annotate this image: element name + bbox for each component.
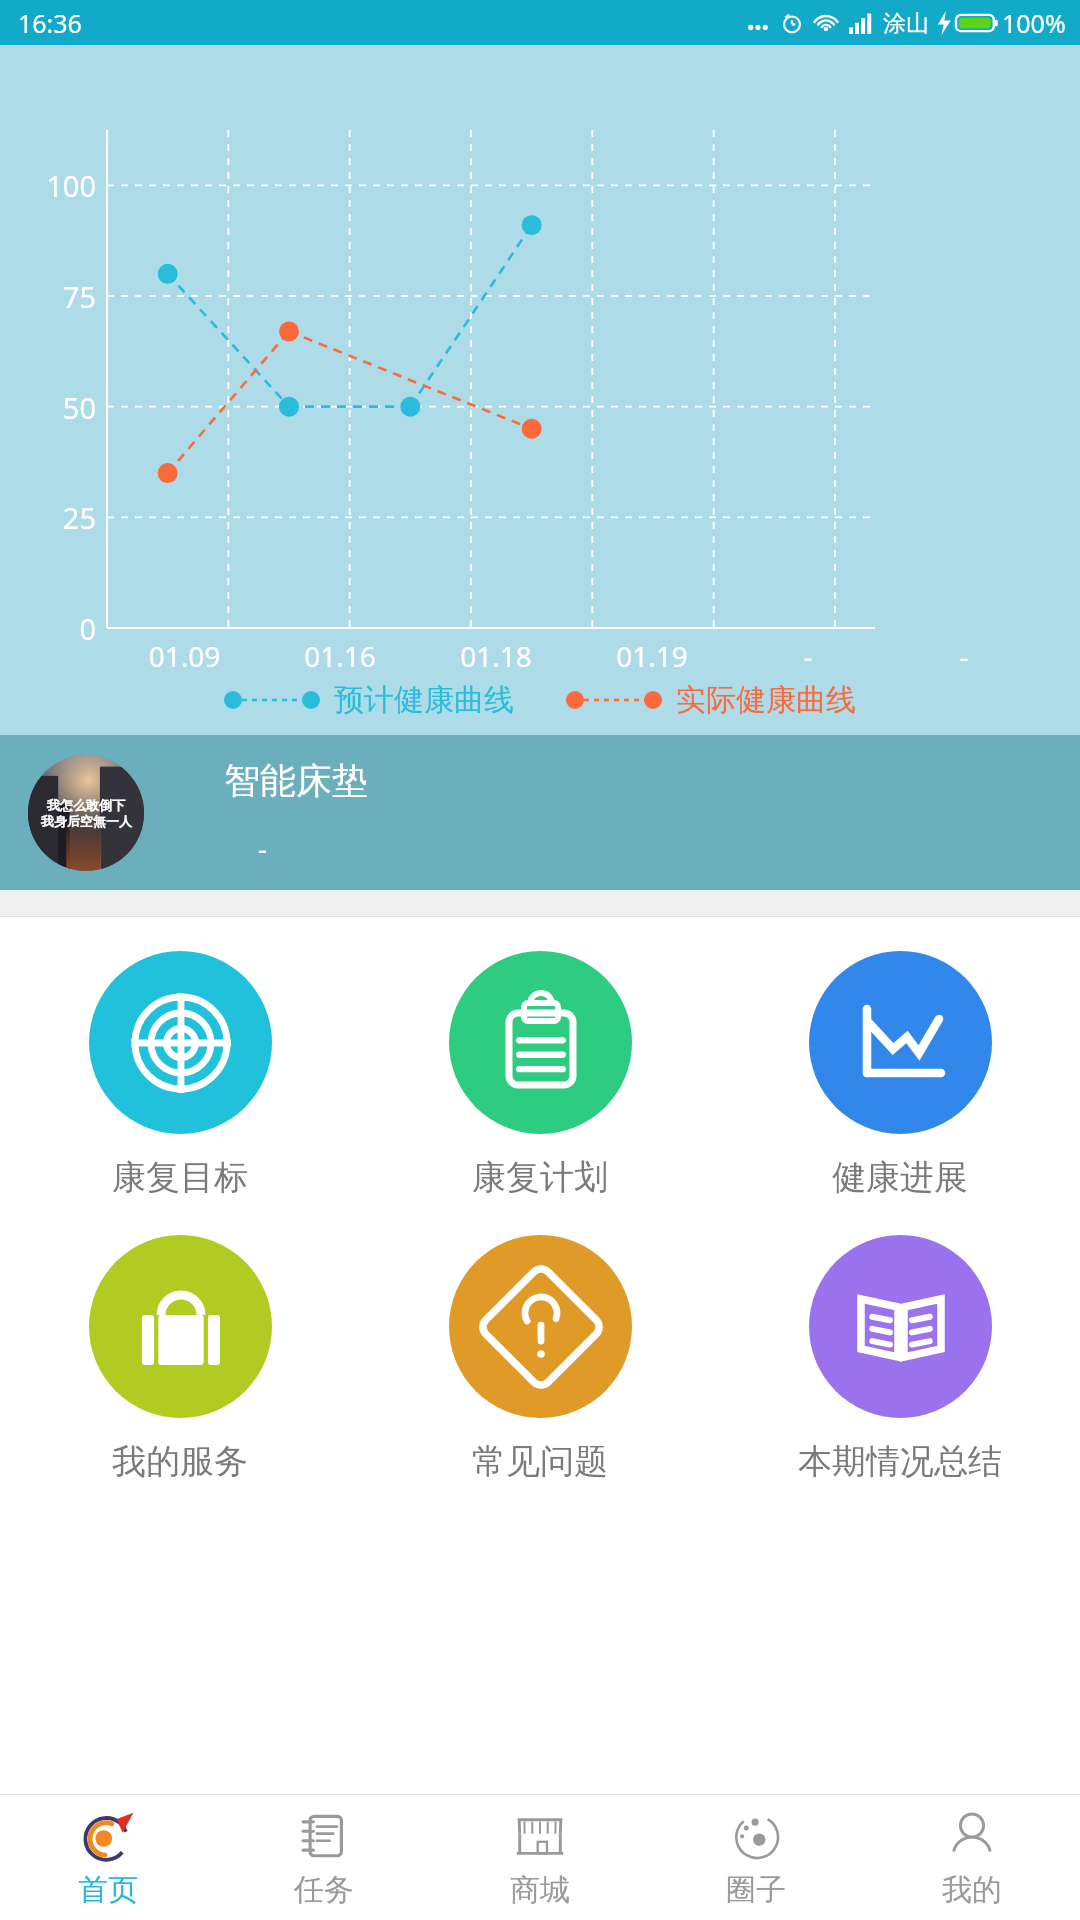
button[interactable]: 首页 [0, 1795, 216, 1920]
staticText: 我的服务 [112, 1440, 248, 1483]
staticText: 商城 [510, 1871, 570, 1909]
staticText: 任务 [294, 1871, 354, 1909]
staticText: 实际健康曲线 [676, 681, 856, 719]
button[interactable]: 我的 [864, 1795, 1080, 1920]
staticText: - [886, 637, 1042, 675]
staticText: 康复计划 [472, 1156, 608, 1199]
staticText: 01.09 [107, 637, 262, 675]
button[interactable]: 商城 [432, 1795, 648, 1920]
staticText: 100% [1002, 6, 1066, 40]
button[interactable]: 任务 [216, 1795, 432, 1920]
staticText: 01.16 [262, 637, 418, 675]
staticText: 我怎么敢倒下 [47, 797, 125, 813]
button[interactable]: 常见问题 [360, 1229, 720, 1489]
staticText: 涂山 [883, 9, 929, 38]
staticText: 01.18 [418, 637, 574, 675]
button[interactable]: 我的服务 [0, 1229, 360, 1489]
button[interactable]: 圈子 [648, 1795, 864, 1920]
staticText: 75 [0, 277, 96, 316]
staticText: 本期情况总结 [798, 1440, 1002, 1483]
staticText: 我身后空無一人 [41, 813, 132, 829]
staticText: 康复目标 [112, 1156, 248, 1199]
staticText: 0 [0, 609, 96, 648]
staticText: 16:36 [18, 6, 82, 40]
button[interactable]: 本期情况总结 [720, 1229, 1080, 1489]
button[interactable]: 康复计划 [360, 945, 720, 1205]
staticText: 首页 [78, 1871, 138, 1909]
staticText: 我的 [942, 1871, 1002, 1909]
staticText: 50 [0, 388, 96, 427]
staticText: - [258, 829, 268, 867]
staticText: 01.19 [574, 637, 730, 675]
staticText: 常见问题 [472, 1440, 608, 1483]
button[interactable]: 康复目标 [0, 945, 360, 1205]
staticText: 圈子 [726, 1871, 786, 1909]
staticText: 健康进展 [832, 1156, 968, 1199]
staticText: 25 [0, 498, 96, 537]
staticText: 预计健康曲线 [334, 681, 514, 719]
staticText: 100 [0, 166, 96, 205]
button[interactable]: 我怎么敢倒下 [0, 735, 1080, 890]
button[interactable]: 健康进展 [720, 945, 1080, 1205]
staticText: - [730, 637, 886, 675]
staticText: 智能床垫 [224, 758, 368, 803]
